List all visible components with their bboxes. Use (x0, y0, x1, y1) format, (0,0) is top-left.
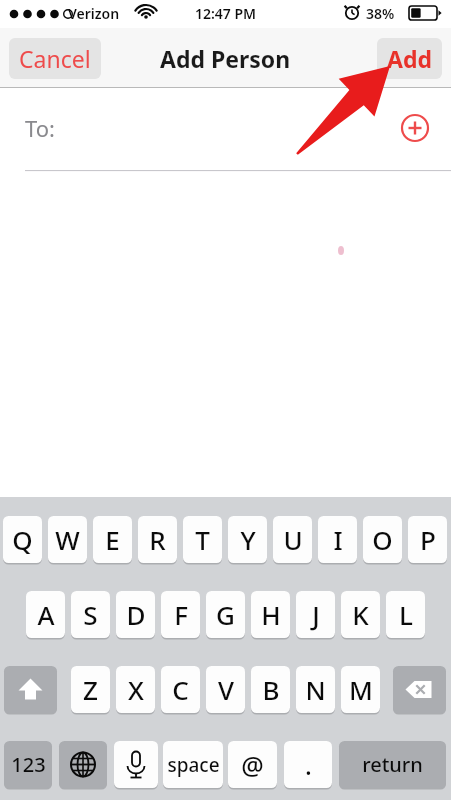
button[interactable]: Add (377, 38, 442, 79)
staticText: J (312, 597, 320, 632)
staticText: C (172, 672, 189, 707)
staticText: Add Person (160, 43, 291, 74)
staticText: G (216, 597, 235, 632)
staticText: U (283, 522, 303, 557)
staticText: 12:47 PM (0, 4, 451, 23)
staticText: Z (83, 672, 98, 707)
staticText: I (333, 522, 343, 557)
button[interactable]: Backspace (393, 666, 446, 713)
button[interactable]: E (93, 516, 132, 563)
staticText: K (352, 597, 369, 632)
staticText: To: (25, 113, 55, 143)
button[interactable]: H (251, 591, 290, 638)
button[interactable]: P (408, 516, 447, 563)
button[interactable]: B (251, 666, 290, 713)
button[interactable]: W (48, 516, 87, 563)
button[interactable]: 123 (4, 741, 52, 788)
button[interactable]: X (116, 666, 155, 713)
staticText: X (128, 672, 144, 707)
staticText: Verizon (68, 4, 120, 23)
staticText: Y (240, 522, 256, 557)
button[interactable]: M (341, 666, 380, 713)
button[interactable]: A (26, 591, 65, 638)
staticText: L (399, 597, 413, 632)
button[interactable]: Q (3, 516, 42, 563)
button[interactable]: R (138, 516, 177, 563)
button[interactable]: @ (228, 741, 277, 788)
button[interactable]: Cancel (9, 38, 101, 79)
staticText: M (349, 672, 373, 707)
staticText: H (261, 597, 281, 632)
button[interactable]: T (183, 516, 222, 563)
button[interactable]: F (161, 591, 200, 638)
staticText: T (195, 522, 210, 557)
staticText: S (83, 597, 98, 632)
button[interactable]: J (296, 591, 335, 638)
button[interactable]: Y (228, 516, 267, 563)
button[interactable]: V (206, 666, 245, 713)
staticText: F (174, 597, 188, 632)
staticText: E (105, 522, 120, 557)
staticText: return (362, 751, 423, 778)
button[interactable]: K (341, 591, 380, 638)
button[interactable]: . (284, 741, 332, 788)
button[interactable]: U (273, 516, 312, 563)
button[interactable]: G (206, 591, 245, 638)
button[interactable]: Add contact (399, 112, 431, 144)
button[interactable]: return (339, 741, 446, 788)
button[interactable]: D (116, 591, 155, 638)
staticText: 38% (366, 4, 395, 23)
button[interactable]: Z (71, 666, 110, 713)
staticText: P (420, 522, 436, 557)
button[interactable]: L (386, 591, 425, 638)
staticText: Q (12, 522, 33, 557)
staticText: @ (241, 748, 264, 782)
button[interactable]: C (161, 666, 200, 713)
staticText: V (218, 672, 234, 707)
button[interactable]: Shift (4, 666, 57, 713)
button[interactable]: O (363, 516, 402, 563)
staticText: Cancel (19, 43, 91, 74)
staticText: space (167, 752, 220, 778)
staticText: O (372, 522, 393, 557)
staticText: Add (387, 43, 432, 74)
button[interactable]: S (71, 591, 110, 638)
staticText: . (305, 748, 312, 782)
staticText: A (37, 597, 55, 632)
staticText: N (305, 672, 326, 707)
button[interactable]: Change keyboard (59, 741, 107, 788)
staticText: B (262, 672, 280, 707)
staticText: 123 (11, 751, 46, 778)
button[interactable]: space (163, 741, 223, 788)
staticText: W (55, 522, 80, 557)
button[interactable]: Dictate (114, 741, 158, 788)
staticText: R (149, 522, 166, 557)
button[interactable]: I (318, 516, 357, 563)
button[interactable]: N (296, 666, 335, 713)
staticText: D (126, 597, 146, 632)
